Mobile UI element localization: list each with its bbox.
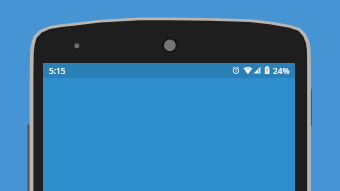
- staticText: 24%: [273, 65, 290, 76]
- staticText: 5:15: [49, 65, 66, 76]
